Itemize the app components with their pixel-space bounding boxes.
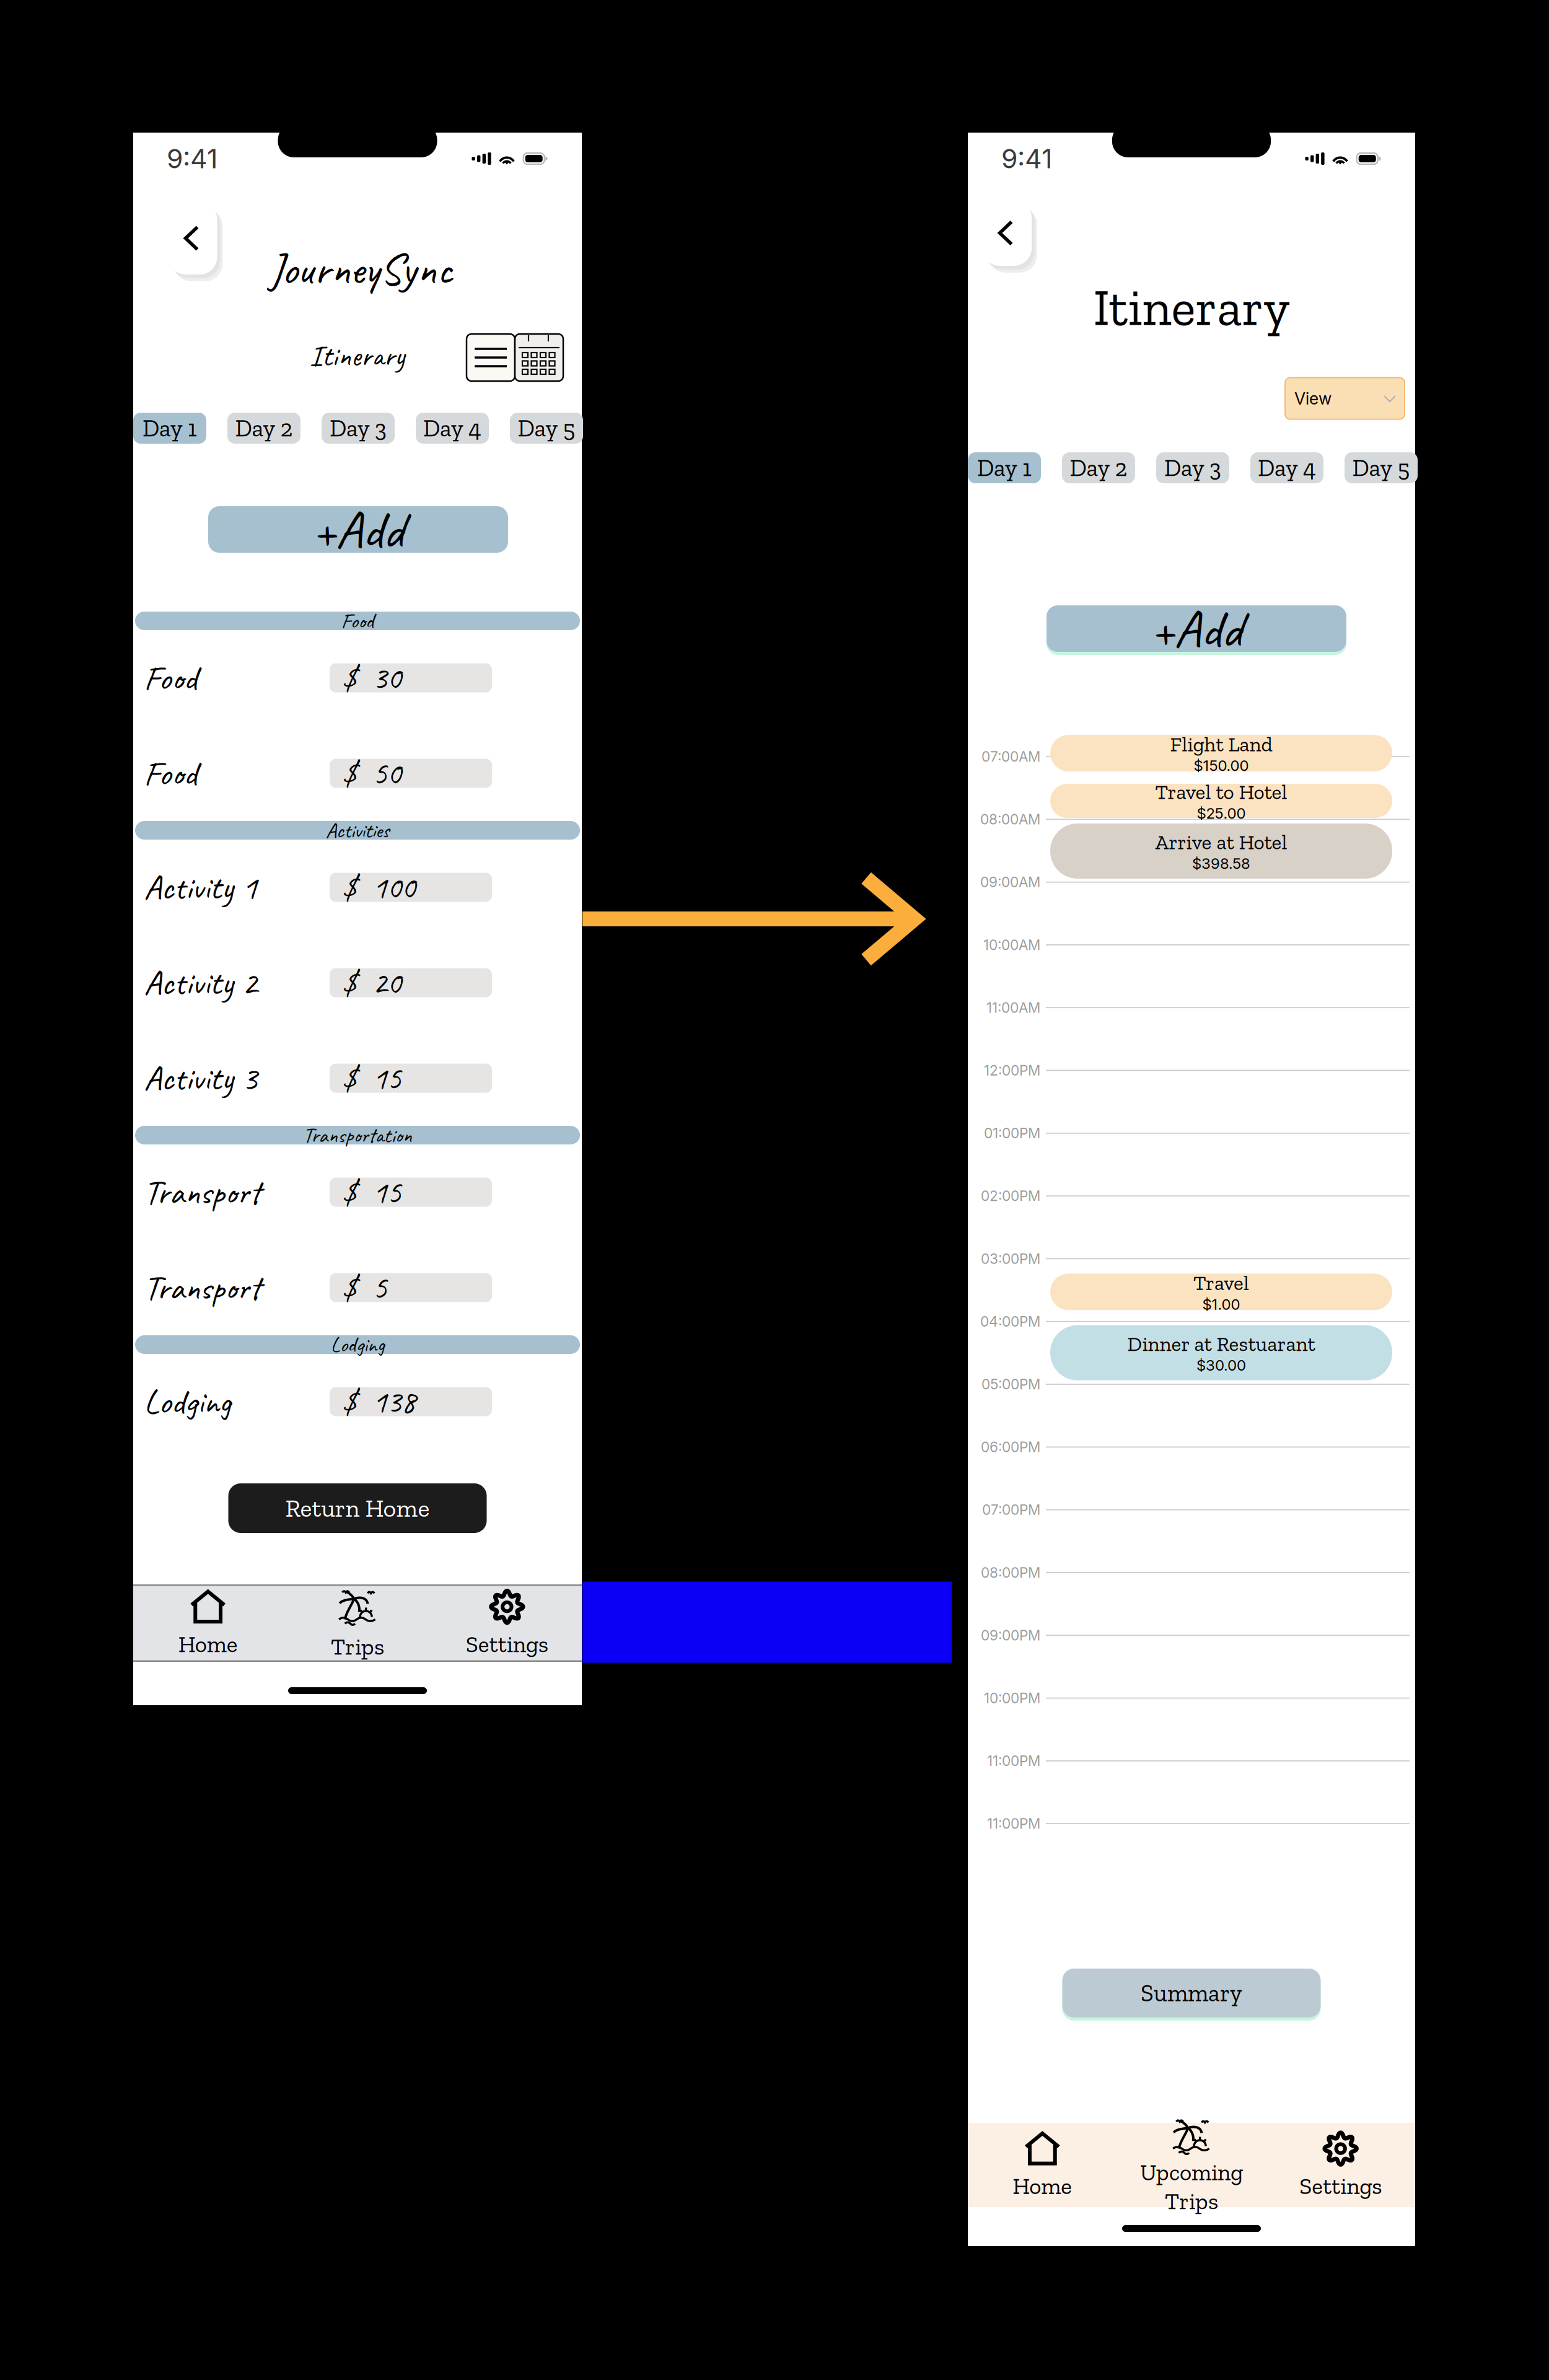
button[interactable]: Home [133,1583,283,1663]
staticText: Dinner at Restuarant [1127,1331,1315,1356]
button[interactable]: Home [968,2125,1117,2205]
button[interactable]: Day 3 [1156,452,1229,483]
staticText: Lodging [144,1380,231,1423]
staticText: $150.00 [1194,757,1249,775]
staticText: Food [144,656,197,700]
staticText: 07:00PM [982,1501,1040,1518]
staticText: Upcoming [1140,2158,1243,2186]
staticText: $ 100 [342,867,415,908]
button[interactable]: Settings [432,1583,582,1663]
staticText: View [1294,388,1332,408]
button[interactable]: Day 5 [1345,452,1418,483]
staticText: +Add [312,496,404,563]
button[interactable]: Day 2 [227,413,301,444]
staticText: Activity 2 [144,961,257,1005]
button[interactable]: Day 5 [510,413,583,444]
staticText: Activity 1 [144,865,257,909]
staticText: Trips [1165,2187,1218,2215]
staticText: 07:00AM [981,748,1040,765]
button[interactable]: Settings [1266,2125,1415,2205]
staticText: Home [1013,2172,1072,2200]
staticText: Travel [1193,1270,1249,1295]
staticText: Day 3 [330,414,387,443]
staticText: Day 1 [977,453,1032,482]
staticText: Day 3 [1164,453,1221,482]
staticText: Transport [144,1266,261,1309]
staticText: Day 5 [1352,453,1410,482]
staticText: Activities [326,817,389,844]
staticText: 09:00PM [981,1627,1040,1644]
button[interactable]: Back [168,202,217,274]
staticText: 03:00PM [981,1250,1040,1267]
staticText: Itinerary [309,337,404,374]
staticText: Day 5 [518,414,575,443]
button[interactable]: +Add [1047,605,1346,655]
button[interactable]: Back [982,200,1032,266]
button[interactable]: Day 4 [1250,452,1323,483]
button[interactable]: Day 1 [133,413,206,444]
staticText: $1.00 [1202,1295,1240,1313]
staticText: $30.00 [1196,1356,1246,1374]
staticText: 10:00PM [984,1690,1040,1707]
staticText: Day 2 [235,414,293,443]
staticText: $398.58 [1192,854,1250,872]
staticText: 08:00PM [981,1564,1040,1581]
staticText: Itinerary [1093,277,1290,338]
staticText: Summary [1141,1979,1242,2007]
staticText: Transport [144,1170,261,1214]
staticText: JourneySync [269,241,453,297]
staticText: $ 5 [342,1267,387,1308]
staticText: 12:00PM [984,1062,1040,1079]
staticText: $ 138 [342,1381,415,1422]
staticText: $ 15 [342,1058,401,1098]
staticText: 11:00PM [987,1752,1040,1769]
button[interactable]: Day 4 [416,413,489,444]
staticText: 02:00PM [981,1187,1040,1204]
staticText: 01:00PM [984,1125,1040,1142]
staticText: Transportation [303,1122,412,1149]
button[interactable]: Day 2 [1062,452,1135,483]
staticText: 9:41 [167,143,217,175]
staticText: 09:00AM [980,874,1040,891]
staticText: $25.00 [1197,804,1246,822]
staticText: Food [341,607,374,634]
staticText: Food [144,751,197,795]
staticText: Flight Land [1170,732,1272,757]
staticText: $ 30 [342,658,401,698]
staticText: Settings [466,1630,548,1658]
staticText: 11:00PM [987,1815,1040,1832]
staticText: 08:00AM [980,811,1040,828]
staticText: Arrive at Hotel [1155,830,1287,854]
button[interactable]: Summary [1062,1969,1321,2021]
staticText: Travel to Hotel [1155,779,1287,804]
staticText: Settings [1299,2172,1382,2200]
button[interactable]: +Add [208,506,508,556]
staticText: Lodging [331,1331,384,1358]
staticText: $ 20 [342,962,401,1003]
staticText: Return Home [285,1493,430,1523]
staticText: Day 1 [143,414,197,443]
button[interactable]: Upcoming [1117,2123,1266,2207]
staticText: 04:00PM [980,1313,1040,1330]
staticText: 06:00PM [981,1439,1040,1456]
staticText: 05:00PM [981,1376,1040,1393]
staticText: 10:00AM [983,936,1040,953]
staticText: Day 4 [1258,453,1316,482]
staticText: +Add [1150,595,1243,662]
button[interactable]: Toggle list or calendar view [467,334,563,381]
button[interactable]: Return Home [228,1483,487,1533]
staticText: Day 2 [1070,453,1127,482]
staticText: $ 15 [342,1172,401,1212]
staticText: 11:00AM [986,999,1040,1016]
staticText: Activity 3 [144,1056,257,1100]
staticText: $ 50 [342,753,401,794]
button[interactable]: Trips [283,1583,432,1663]
staticText: 9:41 [1001,143,1052,175]
button[interactable]: View [1285,378,1405,419]
staticText: Trips [331,1633,384,1661]
button[interactable]: Day 1 [968,452,1041,483]
staticText: Day 4 [423,414,481,443]
button[interactable]: Day 3 [322,413,395,444]
staticText: Home [178,1630,238,1658]
